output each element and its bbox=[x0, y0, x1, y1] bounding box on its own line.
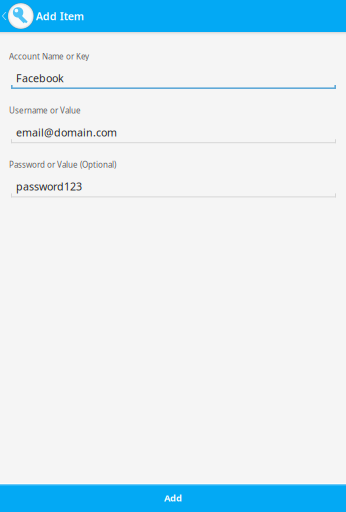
staticText: Add bbox=[164, 492, 182, 504]
staticText: Add Item bbox=[36, 9, 84, 23]
staticText: Facebook bbox=[16, 71, 64, 85]
staticText: password123 bbox=[16, 179, 82, 194]
button[interactable]: Password or Value (Optional) bbox=[0, 159, 346, 202]
staticText: email@domain.com bbox=[16, 125, 117, 139]
button[interactable]: Back bbox=[0, 0, 34, 32]
button[interactable]: Username or Value bbox=[0, 105, 346, 148]
staticText: Username or Value bbox=[9, 105, 81, 116]
staticText: Password or Value (Optional) bbox=[9, 159, 116, 170]
button[interactable]: Add bbox=[0, 484, 346, 512]
button[interactable]: Account Name or Key bbox=[0, 51, 346, 94]
staticText: Account Name or Key bbox=[9, 51, 89, 62]
